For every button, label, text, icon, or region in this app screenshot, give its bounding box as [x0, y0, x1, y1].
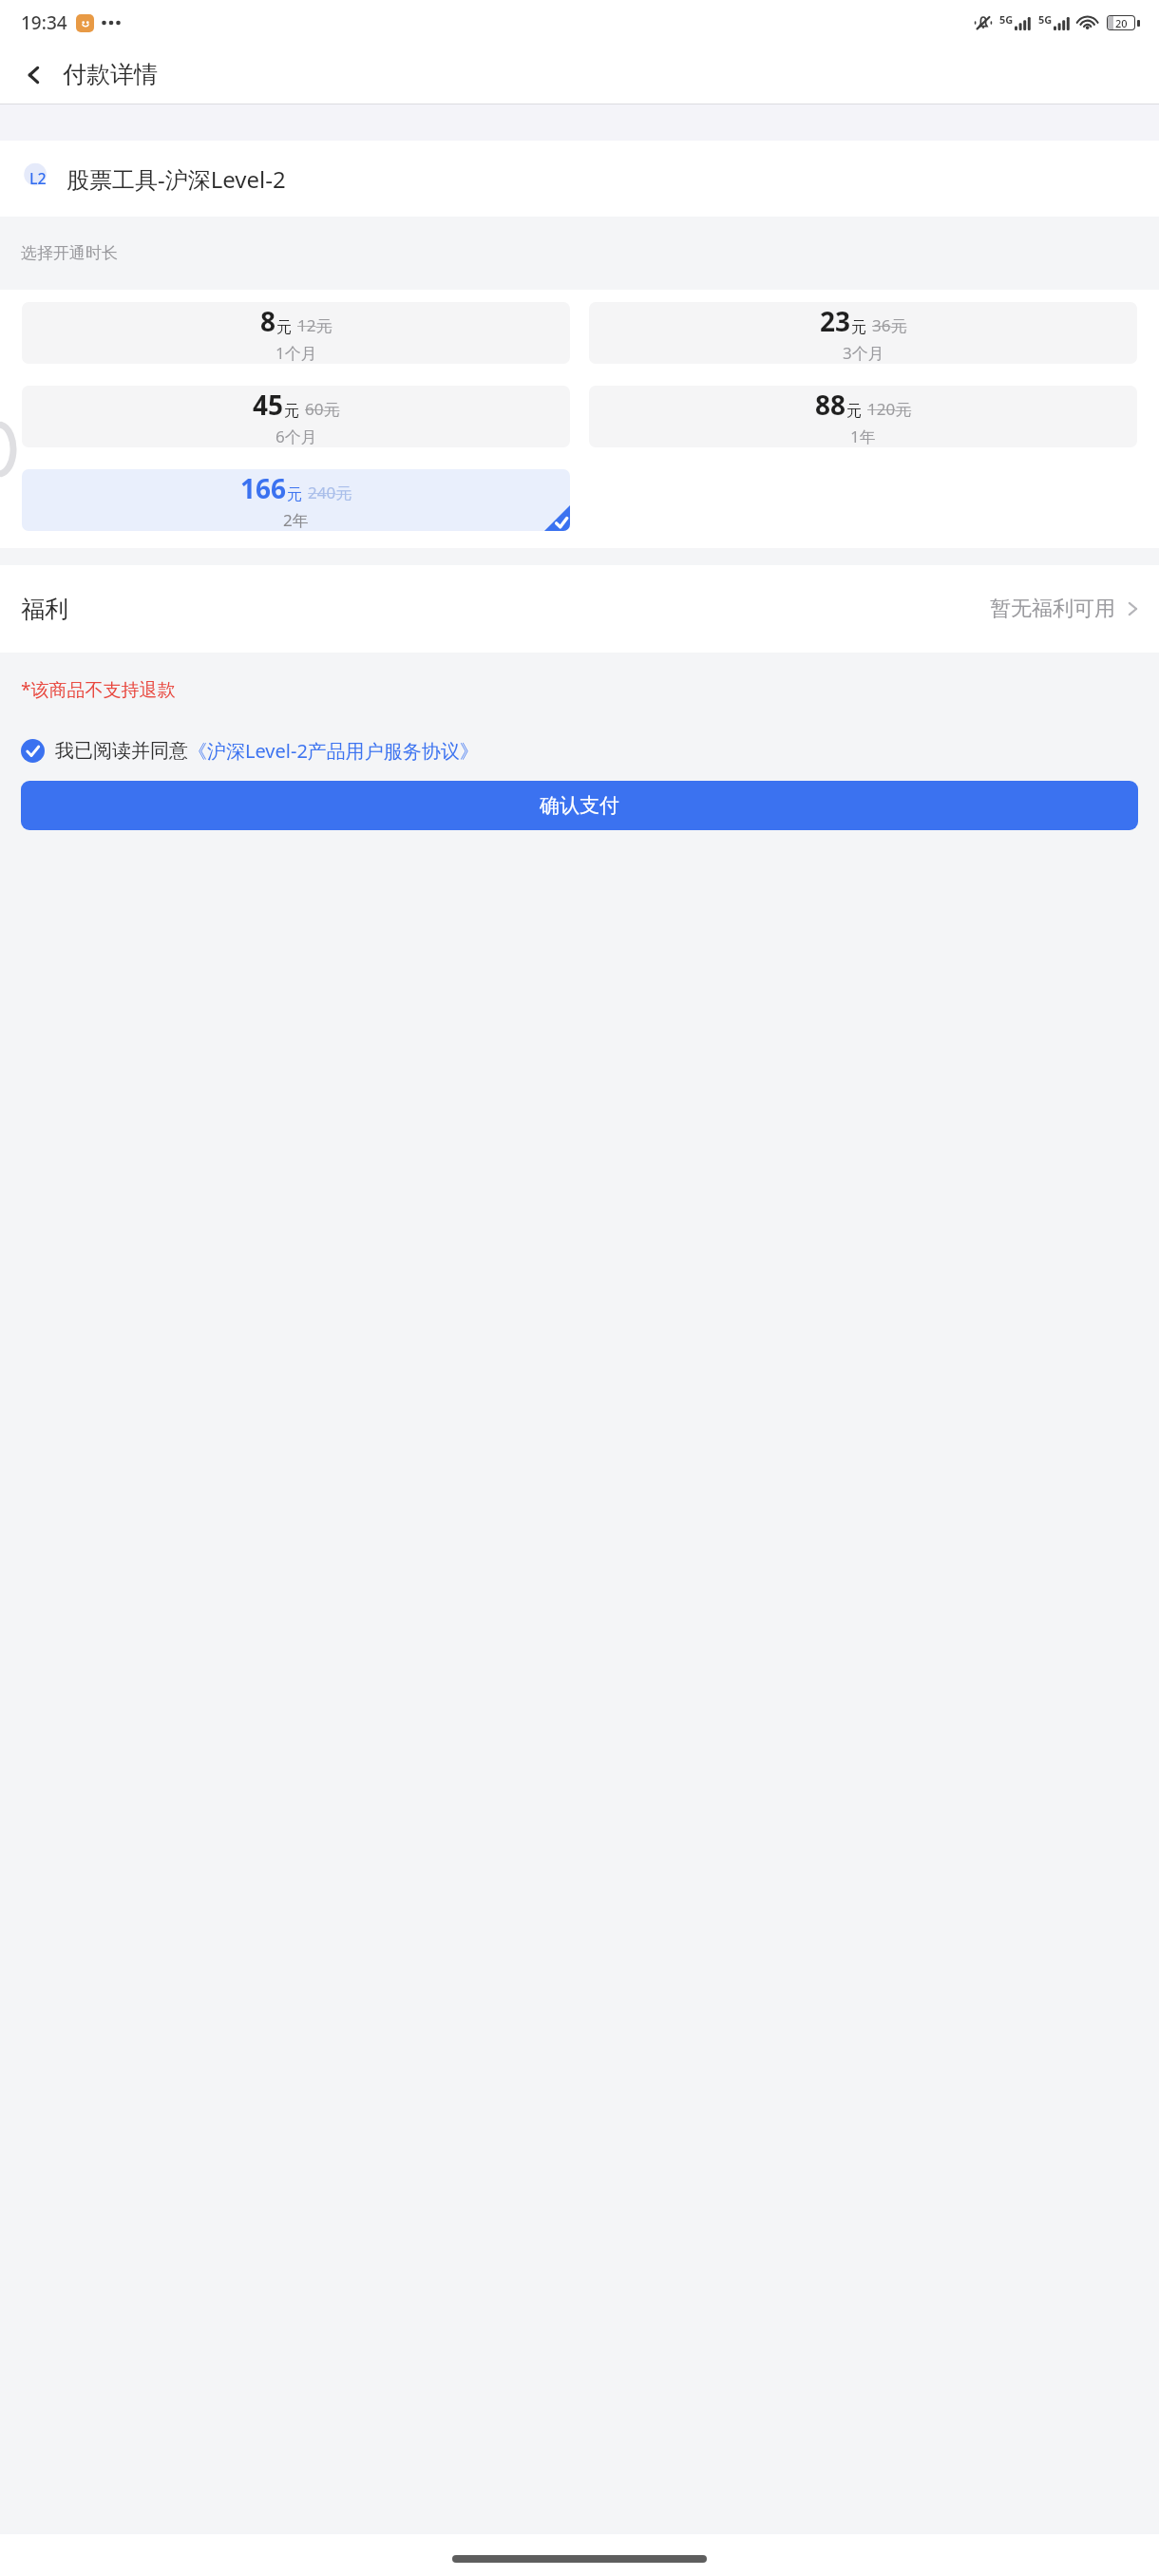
- staticText: 1个月: [275, 342, 317, 364]
- staticText: 元: [284, 402, 299, 421]
- staticText: 暂无福利可用: [990, 596, 1115, 622]
- staticText: 23: [820, 303, 851, 339]
- button[interactable]: 福利: [0, 565, 1159, 653]
- staticText: 福利: [21, 595, 68, 624]
- button[interactable]: 166: [22, 469, 570, 531]
- staticText: 12元: [297, 314, 332, 336]
- staticText: 240元: [308, 482, 352, 503]
- staticText: 166: [240, 470, 287, 506]
- staticText: 2年: [283, 509, 309, 531]
- staticText: 20: [1115, 16, 1128, 29]
- staticText: 元: [276, 318, 292, 337]
- staticText: 元: [851, 318, 866, 337]
- staticText: 60元: [305, 398, 340, 420]
- staticText: 45: [253, 387, 284, 423]
- button[interactable]: 我已阅读并同意: [0, 738, 1159, 764]
- staticText: 36元: [872, 314, 907, 336]
- staticText: 1年: [850, 426, 876, 447]
- staticText: 19:34: [21, 10, 67, 35]
- staticText: 88: [815, 387, 846, 423]
- button[interactable]: Back: [13, 54, 55, 96]
- staticText: *该商品不支持退款: [21, 677, 176, 702]
- staticText: 股票工具-沪深Level-2: [66, 163, 286, 195]
- staticText: 120元: [867, 398, 912, 420]
- button[interactable]: 23: [589, 302, 1137, 364]
- staticText: 选择开通时长: [21, 243, 118, 263]
- button[interactable]: 88: [589, 386, 1137, 447]
- staticText: 5G: [1038, 12, 1053, 27]
- staticText: 3个月: [843, 342, 884, 364]
- staticText: 元: [846, 402, 862, 421]
- staticText: 8: [260, 303, 276, 339]
- button[interactable]: 确认支付: [21, 781, 1138, 830]
- staticText: 《沪深Level-2产品用户服务协议》: [188, 738, 479, 764]
- button[interactable]: 8: [22, 302, 570, 364]
- staticText: 付款详情: [63, 60, 158, 89]
- staticText: 5G: [999, 12, 1014, 27]
- staticText: 6个月: [275, 426, 317, 447]
- staticText: 确认支付: [540, 793, 619, 818]
- staticText: 我已阅读并同意: [55, 739, 188, 763]
- staticText: 元: [287, 485, 302, 504]
- button[interactable]: 45: [22, 386, 570, 447]
- staticText: L2: [29, 168, 47, 189]
